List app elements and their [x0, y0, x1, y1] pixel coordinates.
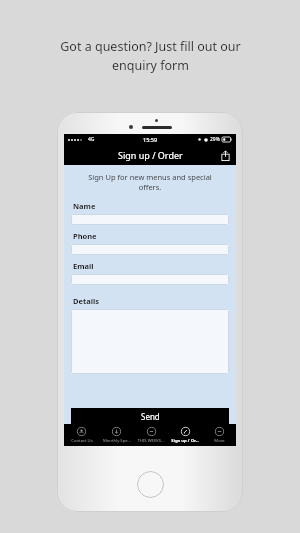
- button[interactable]: Sign up / Or...: [168, 424, 202, 446]
- button[interactable]: THIS WEEKS...: [134, 424, 168, 446]
- staticText: enquiry form: [112, 57, 189, 74]
- staticText: Name: [73, 201, 96, 211]
- button[interactable]: [71, 244, 229, 255]
- staticText: Sign Up for new menus and special offers…: [77, 172, 223, 192]
- staticText: More: [214, 438, 225, 444]
- staticText: THIS WEEKS...: [137, 438, 165, 444]
- staticText: Monthly Spe...: [103, 438, 131, 444]
- other: Home: [137, 471, 164, 498]
- button[interactable]: [71, 274, 229, 285]
- button[interactable]: Send: [71, 408, 229, 424]
- button[interactable]: Contact Us: [64, 424, 99, 446]
- staticText: Got a question? Just fill out our: [60, 38, 241, 55]
- button[interactable]: [71, 309, 229, 374]
- staticText: Phone: [73, 231, 97, 241]
- button[interactable]: Monthly Spe...: [99, 424, 134, 446]
- button[interactable]: Share: [218, 148, 232, 162]
- staticText: Sign up / Or...: [171, 438, 199, 444]
- staticText: 29%: [210, 136, 220, 143]
- button[interactable]: [71, 214, 229, 225]
- button[interactable]: More: [202, 424, 236, 446]
- staticText: Contact Us: [71, 438, 93, 444]
- staticText: 15:59: [143, 136, 158, 143]
- staticText: Send: [141, 411, 160, 422]
- staticText: Details: [73, 296, 99, 306]
- staticText: 4G: [88, 136, 95, 143]
- staticText: Sign up / Order: [118, 149, 183, 161]
- staticText: Email: [73, 261, 94, 271]
